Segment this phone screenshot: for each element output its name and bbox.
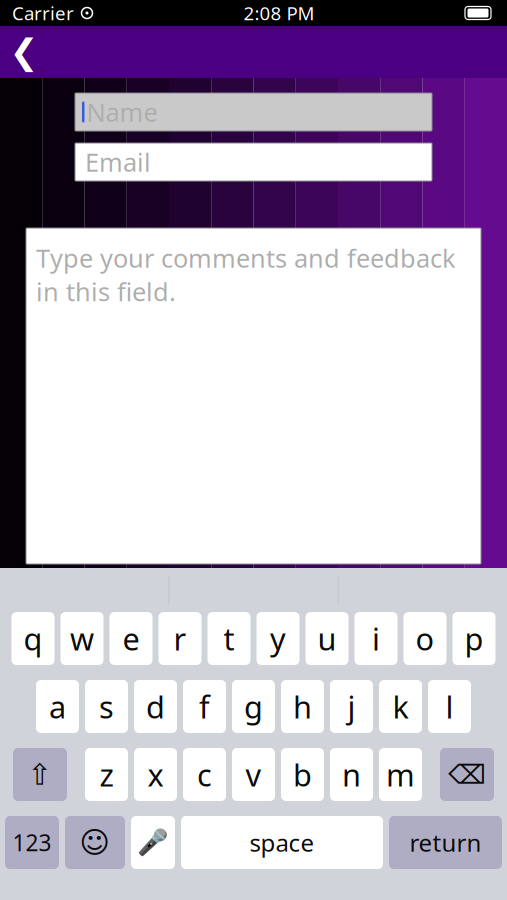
staticText: Carrier (12, 1, 74, 25)
staticText: d (146, 686, 165, 727)
button[interactable]: Email (75, 143, 432, 181)
button[interactable]: m (379, 748, 422, 801)
staticText: c (197, 754, 212, 795)
staticText: q (23, 618, 42, 659)
staticText: space (249, 827, 314, 858)
staticText: v (245, 754, 261, 795)
staticText: n (342, 754, 361, 795)
staticText: return (409, 827, 481, 858)
staticText: ❮ (9, 32, 38, 72)
button[interactable]: o (403, 612, 446, 665)
staticText: z (99, 754, 113, 795)
button[interactable]: space (181, 816, 383, 869)
staticText: p (464, 618, 483, 659)
staticText: j (347, 686, 355, 727)
staticText: k (392, 686, 408, 727)
button[interactable]: k (379, 680, 422, 733)
button[interactable]: y (256, 612, 299, 665)
button[interactable]: f (183, 680, 226, 733)
button[interactable]: q (11, 612, 54, 665)
button[interactable]: u (305, 612, 348, 665)
button[interactable]: p (452, 612, 495, 665)
button[interactable]: Shift (13, 748, 67, 801)
staticText: Type your comments and feedback in this … (36, 241, 456, 308)
button[interactable]: z (85, 748, 128, 801)
button[interactable]: g (232, 680, 275, 733)
button[interactable]: c (183, 748, 226, 801)
button[interactable]: 123 (5, 816, 59, 869)
staticText: h (293, 686, 312, 727)
button[interactable]: n (330, 748, 373, 801)
button[interactable]: j (330, 680, 373, 733)
button[interactable]: return (389, 816, 502, 869)
staticText: l (445, 686, 453, 727)
staticText: ⌫ (448, 759, 486, 790)
staticText: 123 (12, 827, 51, 857)
button[interactable]: s (85, 680, 128, 733)
button[interactable]: e (109, 612, 152, 665)
staticText: ⇧ (27, 758, 52, 791)
button[interactable]: v (232, 748, 275, 801)
button[interactable]: r (158, 612, 201, 665)
button[interactable]: a (36, 680, 79, 733)
staticText: 🎤 (137, 828, 169, 857)
button[interactable]: Type your comments and feedback in this … (26, 228, 481, 564)
staticText: f (199, 686, 210, 727)
staticText: b (293, 754, 312, 795)
staticText: Email (85, 145, 151, 179)
button[interactable]: Name (75, 93, 432, 131)
staticText: t (223, 618, 234, 659)
staticText: 2:08 PM (243, 1, 314, 25)
staticText: r (173, 618, 186, 659)
staticText: y (270, 618, 286, 659)
button[interactable]: x (134, 748, 177, 801)
staticText: u (317, 618, 336, 659)
button[interactable]: d (134, 680, 177, 733)
staticText: w (70, 618, 94, 659)
staticText: i (372, 618, 380, 659)
staticText: m (386, 754, 415, 795)
staticText: e (122, 618, 139, 659)
button[interactable]: t (207, 612, 250, 665)
button[interactable]: i (354, 612, 397, 665)
staticText: o (415, 618, 434, 659)
staticText: a (49, 686, 66, 727)
staticText: ☺ (79, 826, 110, 859)
button[interactable]: l (428, 680, 471, 733)
button[interactable]: b (281, 748, 324, 801)
staticText: Name (86, 95, 157, 129)
button[interactable]: h (281, 680, 324, 733)
button[interactable]: Dictation (131, 816, 175, 869)
button[interactable]: w (60, 612, 103, 665)
button[interactable]: Delete (440, 748, 494, 801)
staticText: g (244, 686, 263, 727)
button[interactable]: Emoji (65, 816, 125, 869)
button[interactable]: Back (0, 26, 48, 78)
staticText: x (147, 754, 163, 795)
staticText: s (99, 686, 114, 727)
